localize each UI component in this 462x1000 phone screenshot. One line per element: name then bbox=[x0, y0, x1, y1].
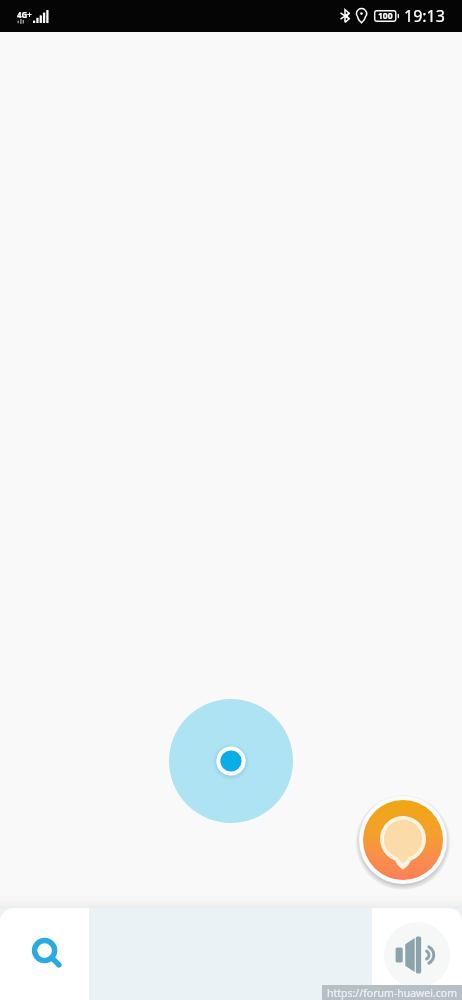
staticText: 19:13 bbox=[404, 5, 445, 27]
button[interactable]: Nearby places bbox=[359, 796, 447, 884]
button[interactable]: Search bbox=[0, 908, 89, 1000]
staticText: 4G+ bbox=[17, 9, 32, 20]
staticText: https://forum-huawei.com bbox=[327, 986, 457, 1000]
button[interactable]: Voice assistant bbox=[372, 908, 462, 1000]
staticText: 100 bbox=[378, 10, 393, 22]
